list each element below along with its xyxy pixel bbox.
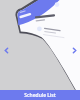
staticText: Schedule List <box>24 92 56 99</box>
button[interactable]: Schedule List <box>0 90 80 100</box>
button[interactable]: Next screenshot <box>69 45 79 55</box>
button[interactable]: Previous screenshot <box>1 45 11 55</box>
